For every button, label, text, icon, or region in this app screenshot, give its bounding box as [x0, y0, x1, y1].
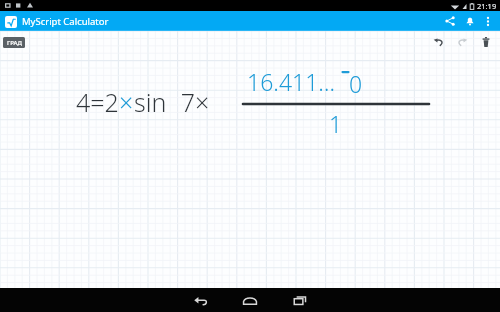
- staticText: 4=2: [76, 85, 119, 119]
- button[interactable]: Recent apps: [288, 288, 312, 312]
- button[interactable]: Redo: [452, 32, 472, 52]
- button[interactable]: Notifications: [460, 11, 480, 31]
- staticText: MyScript Calculator: [22, 15, 109, 28]
- staticText: sin 7: [134, 85, 195, 119]
- staticText: ×: [195, 85, 210, 119]
- button[interactable]: Share: [440, 11, 460, 31]
- staticText: ГРАД: [7, 39, 22, 47]
- button[interactable]: Undo: [428, 32, 448, 52]
- staticText: 21:19: [477, 1, 497, 11]
- button[interactable]: More options: [480, 13, 496, 29]
- staticText: 16.411…: [247, 66, 336, 97]
- staticText: ×: [119, 85, 134, 119]
- button[interactable]: Clear: [476, 32, 496, 52]
- button[interactable]: ГРАД: [3, 37, 25, 48]
- staticText: 0: [349, 68, 363, 99]
- button[interactable]: Home: [238, 288, 262, 312]
- staticText: 1: [329, 108, 343, 139]
- button[interactable]: Back: [188, 288, 212, 312]
